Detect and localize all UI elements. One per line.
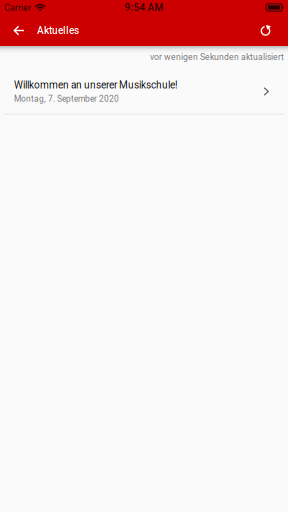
staticText: Carrier (4, 2, 31, 13)
staticText: Willkommen an unserer Musikschule! (14, 79, 178, 91)
button[interactable]: Willkommen an unserer Musikschule! (0, 62, 288, 115)
staticText: vor wenigen Sekunden aktualisiert (150, 52, 284, 62)
button[interactable]: Refresh (252, 15, 280, 46)
staticText: Montag, 7. September 2020 (14, 94, 119, 104)
button[interactable]: Back (7, 15, 31, 46)
staticText: 9:54 AM (124, 2, 163, 13)
staticText: Aktuelles (37, 25, 79, 36)
